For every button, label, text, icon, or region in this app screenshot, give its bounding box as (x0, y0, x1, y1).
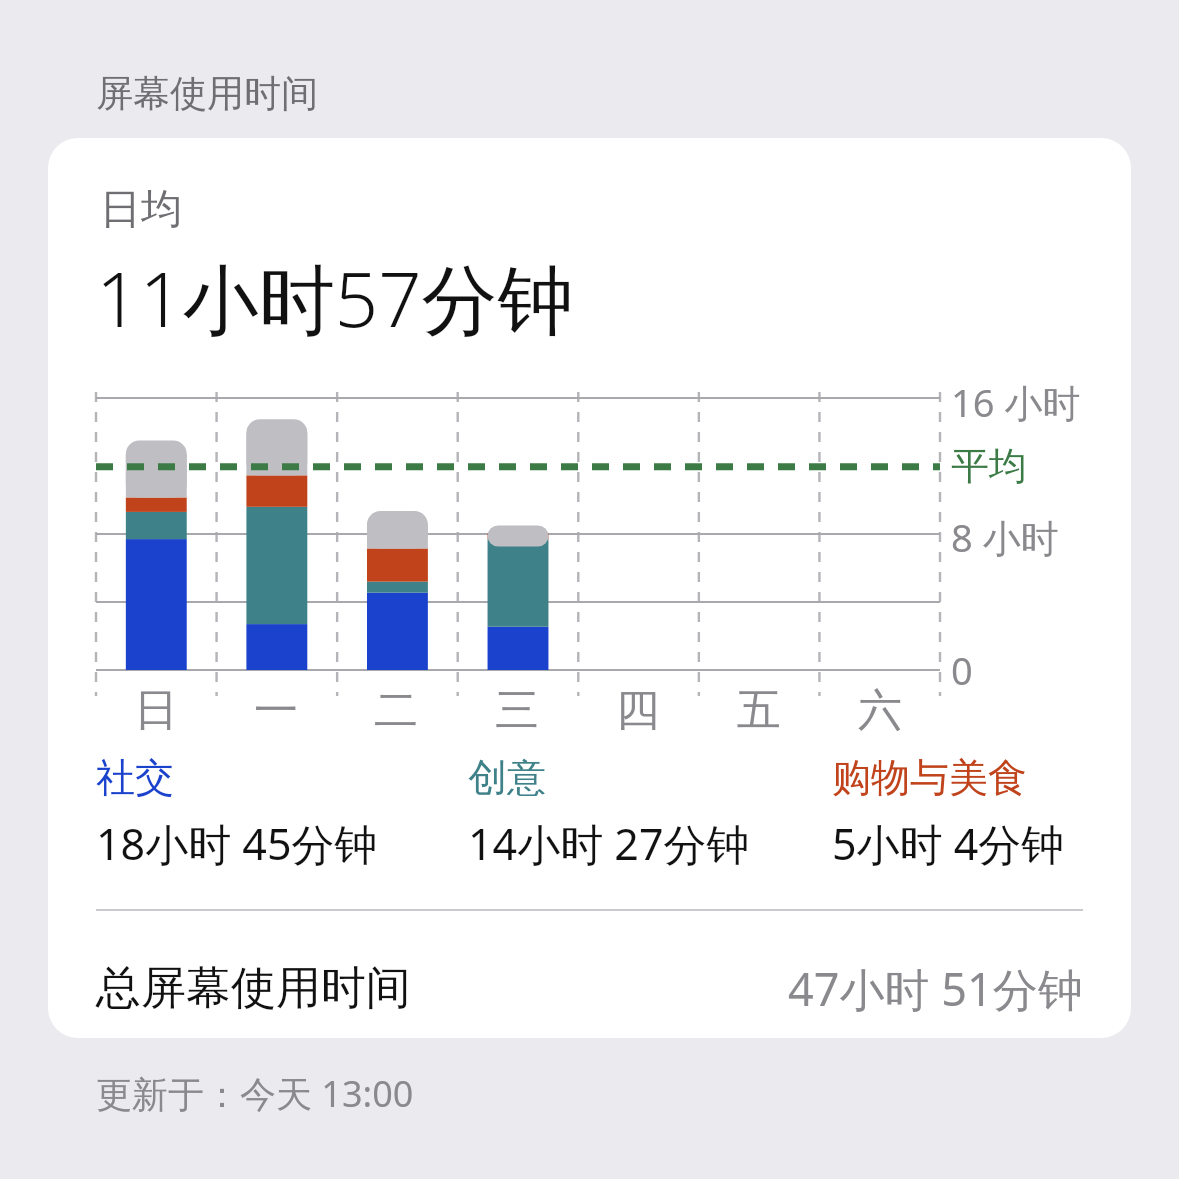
staticText: 屏幕使用时间 (96, 70, 318, 117)
staticText: 更新于：今天 13:00 (96, 1069, 414, 1118)
staticText: 日 (134, 683, 178, 738)
staticText: 一 (254, 683, 298, 738)
staticText: 平均 (951, 442, 1027, 490)
staticText: 三 (495, 683, 539, 738)
staticText: 购物与美食 (832, 753, 1027, 802)
button[interactable]: 社交 (96, 753, 436, 873)
staticText: 四 (616, 683, 660, 738)
staticText: 18小时 45分钟 (96, 814, 378, 873)
staticText: 社交 (96, 753, 174, 802)
staticText: 11小时57分钟 (96, 246, 574, 350)
staticText: 五 (737, 683, 781, 738)
staticText: 六 (858, 683, 902, 738)
staticText: 日均 (100, 184, 182, 236)
button[interactable]: 创意 (468, 753, 808, 873)
button[interactable]: 日均 (48, 138, 1131, 1038)
button[interactable]: 购物与美食 (832, 753, 1131, 873)
staticText: 16 小时 (951, 376, 1081, 428)
staticText: 8 小时 (951, 511, 1059, 563)
staticText: 0 (951, 644, 973, 696)
staticText: 47小时 51分钟 (788, 958, 1083, 1019)
staticText: 总屏幕使用时间 (96, 960, 411, 1017)
staticText: 创意 (468, 753, 546, 802)
staticText: 5小时 4分钟 (832, 814, 1065, 873)
staticText: 14小时 27分钟 (468, 814, 750, 873)
other: 每日屏幕使用时间柱状图 (96, 390, 940, 678)
button[interactable]: 总屏幕使用时间 (48, 938, 1131, 1038)
staticText: 二 (374, 683, 418, 738)
